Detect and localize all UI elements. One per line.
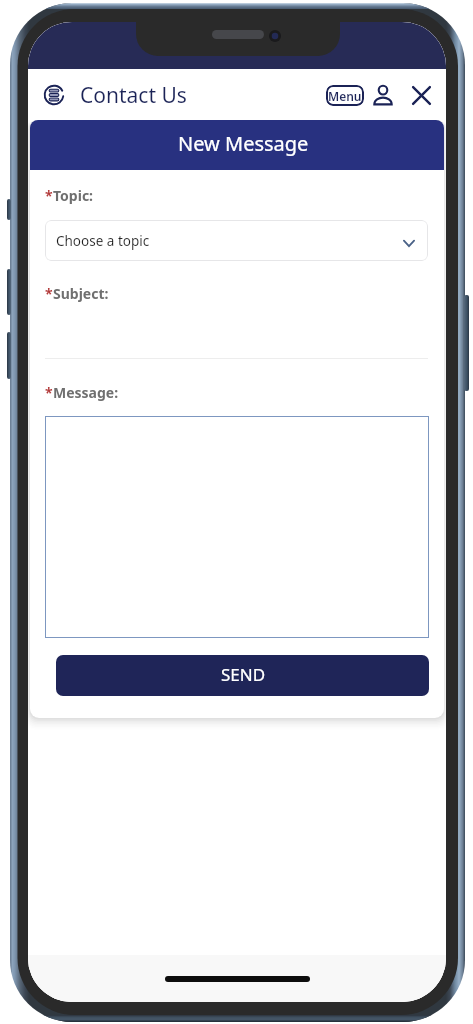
staticText: Topic:: [53, 186, 94, 205]
staticText: New Message: [178, 130, 309, 157]
button[interactable]: Close: [411, 85, 432, 106]
button[interactable]: Menu: [326, 85, 364, 106]
staticText: *: [45, 186, 53, 205]
staticText: SEND: [221, 663, 266, 686]
staticText: Subject:: [53, 284, 109, 303]
staticText: Contact Us: [80, 81, 187, 110]
button[interactable]: App logo: [40, 81, 68, 109]
button[interactable]: [45, 416, 429, 638]
button[interactable]: SEND: [56, 655, 429, 696]
staticText: *: [45, 284, 53, 303]
button[interactable]: Choose a topic: [45, 220, 428, 261]
staticText: *: [45, 383, 53, 402]
staticText: Choose a topic: [56, 232, 150, 250]
staticText: Menu: [328, 88, 362, 104]
button[interactable]: Account: [373, 85, 393, 105]
staticText: Message:: [53, 383, 119, 402]
